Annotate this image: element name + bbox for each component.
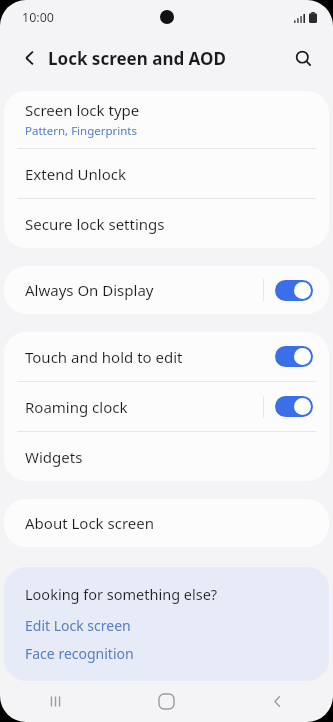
- staticText: 10:00: [22, 9, 54, 26]
- staticText: Screen lock type: [25, 100, 140, 120]
- staticText: Lock screen and AOD: [48, 47, 226, 70]
- staticText: Always On Display: [25, 280, 263, 300]
- staticText: Extend Unlock: [25, 164, 126, 184]
- button[interactable]: Always On Display toggle, on: [275, 280, 313, 301]
- button[interactable]: Screen lock type: [4, 91, 329, 148]
- staticText: Looking for something else?: [25, 584, 218, 604]
- button[interactable]: Extend Unlock: [4, 149, 329, 198]
- button[interactable]: Widgets: [4, 432, 329, 481]
- button[interactable]: Always On Display: [4, 266, 329, 314]
- button[interactable]: Back: [222, 681, 333, 722]
- button[interactable]: Touch and hold to edit: [4, 332, 329, 381]
- button[interactable]: Face recognition: [25, 644, 134, 663]
- staticText: About Lock screen: [25, 513, 154, 533]
- button[interactable]: Secure lock settings: [4, 199, 329, 248]
- button[interactable]: Roaming clock toggle, on: [275, 396, 313, 417]
- button[interactable]: Recent apps: [0, 681, 111, 722]
- staticText: Touch and hold to edit: [25, 347, 275, 367]
- button[interactable]: Home: [111, 681, 222, 722]
- button[interactable]: Roaming clock: [4, 382, 329, 431]
- staticText: Secure lock settings: [25, 214, 165, 234]
- staticText: Pattern, Fingerprints: [25, 123, 138, 139]
- button[interactable]: Touch and hold to edit toggle, on: [275, 346, 313, 367]
- button[interactable]: Search: [284, 39, 322, 77]
- button[interactable]: Edit Lock screen: [25, 616, 131, 635]
- staticText: Roaming clock: [25, 397, 263, 417]
- button[interactable]: Back: [11, 39, 49, 77]
- staticText: Widgets: [25, 447, 83, 467]
- button[interactable]: About Lock screen: [4, 499, 329, 547]
